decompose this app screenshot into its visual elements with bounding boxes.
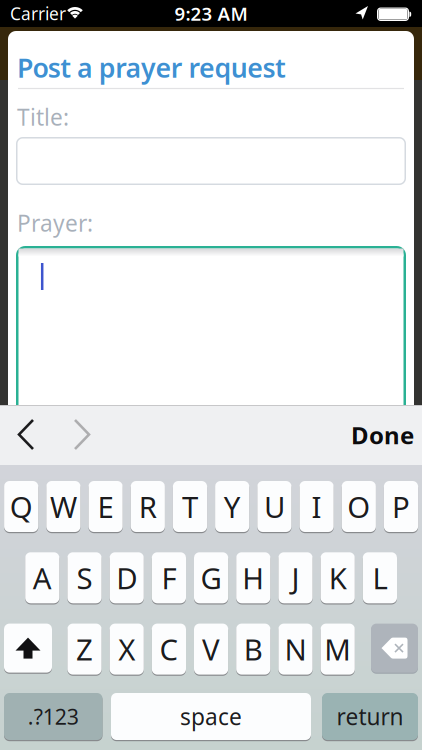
staticText: G — [201, 558, 222, 597]
staticText: D — [116, 558, 137, 597]
staticText: Z — [76, 630, 93, 669]
button[interactable] — [11, 412, 41, 456]
button[interactable]: Q — [4, 480, 38, 533]
button[interactable]: Z — [67, 623, 102, 675]
button[interactable] — [16, 137, 406, 185]
button[interactable]: N — [278, 623, 313, 675]
staticText: X — [118, 630, 135, 669]
staticText: R — [139, 487, 157, 526]
staticText: Prayer: — [17, 208, 93, 238]
staticText: N — [284, 630, 306, 669]
staticText: C — [159, 630, 178, 669]
staticText: U — [264, 487, 285, 526]
button[interactable]: D — [110, 552, 144, 604]
button[interactable]: space — [111, 692, 311, 741]
staticText: Post a prayer request — [17, 50, 286, 85]
button[interactable]: M — [321, 623, 355, 675]
button[interactable]: K — [321, 552, 355, 604]
staticText: K — [329, 558, 347, 597]
staticText: W — [50, 487, 77, 526]
button[interactable]: L — [363, 552, 397, 604]
staticText: M — [324, 630, 351, 669]
staticText: S — [76, 558, 92, 597]
staticText: I — [312, 487, 322, 526]
button[interactable]: W — [46, 480, 80, 533]
button[interactable] — [371, 623, 418, 673]
button[interactable]: H — [236, 552, 270, 604]
staticText: A — [33, 558, 52, 597]
staticText: 9:23 AM — [174, 1, 247, 26]
staticText: B — [244, 630, 263, 669]
button[interactable]: R — [131, 480, 165, 533]
button[interactable]: X — [110, 623, 144, 675]
button[interactable]: C — [152, 623, 186, 675]
staticText: Q — [10, 487, 33, 526]
staticText: space — [180, 701, 242, 731]
button[interactable]: O — [342, 480, 376, 533]
button[interactable]: J — [278, 552, 313, 604]
staticText: O — [347, 487, 370, 526]
button[interactable]: U — [257, 480, 291, 533]
button[interactable]: E — [88, 480, 123, 533]
staticText: Carrier — [10, 2, 66, 25]
staticText: L — [372, 558, 387, 597]
staticText: E — [98, 487, 114, 526]
staticText: Y — [224, 487, 241, 526]
staticText: .?123 — [28, 702, 79, 731]
staticText: P — [392, 487, 410, 526]
staticText: F — [161, 558, 176, 597]
button[interactable]: I — [299, 480, 334, 533]
button[interactable]: Y — [215, 480, 249, 533]
button[interactable] — [67, 412, 97, 456]
button[interactable] — [16, 246, 406, 446]
staticText: Done — [351, 419, 414, 451]
button[interactable]: B — [236, 623, 270, 675]
button[interactable]: F — [152, 552, 186, 604]
button[interactable]: G — [194, 552, 228, 604]
staticText: H — [242, 558, 264, 597]
button[interactable]: Done — [345, 413, 420, 457]
staticText: T — [182, 487, 198, 526]
button[interactable] — [4, 623, 52, 673]
button[interactable]: T — [173, 480, 207, 533]
button[interactable]: A — [25, 552, 59, 604]
button[interactable]: P — [384, 480, 418, 533]
button[interactable]: V — [194, 623, 228, 675]
staticText: return — [336, 701, 403, 731]
staticText: Title: — [17, 102, 69, 132]
staticText: V — [202, 630, 220, 669]
button[interactable]: .?123 — [4, 692, 102, 741]
button[interactable]: return — [322, 692, 418, 741]
button[interactable]: S — [67, 552, 102, 604]
staticText: J — [291, 558, 299, 597]
